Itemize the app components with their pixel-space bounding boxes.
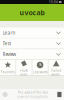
staticText: Last words <box>33 70 48 74</box>
staticText: Free apps of the day <box>17 90 47 94</box>
button[interactable]: Learn <box>0 28 64 38</box>
staticText: Failed words <box>51 68 61 77</box>
staticText: Test <box>2 40 11 47</box>
staticText: uvocab <box>19 8 44 17</box>
staticText: Flash cards <box>20 68 28 77</box>
staticText: Learn <box>2 30 15 36</box>
button[interactable]: Last words <box>32 60 48 75</box>
button[interactable]: Review <box>0 49 64 60</box>
staticText: Favorites <box>1 70 15 74</box>
staticText: 10:04 <box>49 0 58 4</box>
button[interactable]: Test <box>0 38 64 49</box>
button[interactable]: Flash cards <box>16 60 32 75</box>
button[interactable]: Favorites <box>0 60 16 75</box>
staticText: Review <box>2 51 16 57</box>
staticText: powered by appturbo <box>16 95 48 98</box>
button[interactable]: Failed words <box>48 60 64 75</box>
